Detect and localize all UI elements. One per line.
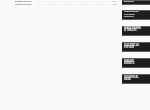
staticText: TECHNICAL DATA bbox=[124, 75, 139, 81]
button[interactable]: Engine service bbox=[122, 58, 150, 68]
button[interactable]: Lubrication and engine section bbox=[122, 10, 150, 20]
button[interactable]: Section index bbox=[122, 0, 150, 5]
button[interactable]: Electrical system bbox=[122, 42, 150, 52]
staticText: TECHNICAL DATA bbox=[15, 3, 32, 6]
button[interactable]: ENGINE SERVICE bbox=[15, 0, 116, 3]
button[interactable]: Main frame and tracks bbox=[122, 26, 150, 36]
button[interactable]: Technical data bbox=[122, 74, 150, 84]
staticText: ENGINE SERVICE bbox=[15, 0, 32, 3]
staticText: MAIN FRAME & TRACKS bbox=[124, 26, 141, 32]
staticText: 4-1 bbox=[113, 0, 116, 3]
staticText: 4-2 bbox=[113, 3, 116, 6]
staticText: ELECTRICAL SYSTEM bbox=[124, 43, 140, 49]
staticText: LUBRICATION & ENGINE SECTION bbox=[124, 10, 139, 18]
button[interactable]: TECHNICAL DATA bbox=[15, 3, 116, 6]
staticText: SECTION bbox=[124, 0, 134, 3]
staticText: ENGINE SERVICE bbox=[124, 59, 135, 65]
